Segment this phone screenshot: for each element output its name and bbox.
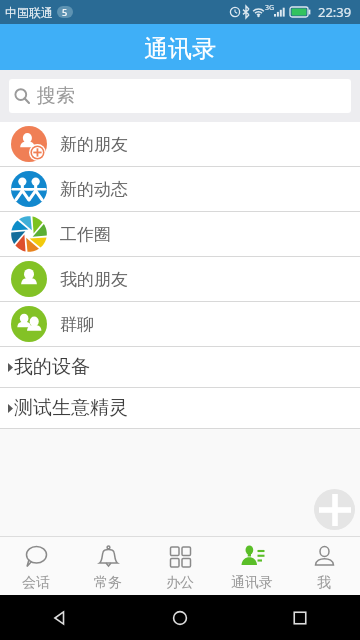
staticText: 测试生意精灵: [14, 396, 128, 420]
staticText: 通讯录: [231, 574, 273, 592]
button[interactable]: 新的动态: [0, 167, 360, 212]
button[interactable]: 工作圈: [0, 212, 360, 257]
button[interactable]: 我的设备: [0, 347, 360, 388]
button[interactable]: 新的朋友: [0, 122, 360, 167]
button[interactable]: 我的朋友: [0, 257, 360, 302]
staticText: 常务: [94, 574, 122, 592]
staticText: 5: [62, 6, 68, 18]
button[interactable]: Add: [314, 489, 355, 530]
button[interactable]: 群聊: [0, 302, 360, 347]
staticText: 通讯录: [144, 34, 216, 64]
button[interactable]: 我: [288, 537, 360, 595]
button[interactable]: Back: [0, 595, 120, 640]
staticText: 我的设备: [14, 355, 90, 379]
staticText: 3G: [265, 3, 275, 13]
button[interactable]: 常务: [72, 537, 144, 595]
staticText: 中国联通: [5, 5, 53, 20]
button[interactable]: Recents: [240, 595, 360, 640]
button[interactable]: Home: [120, 595, 240, 640]
staticText: 22:39: [318, 3, 352, 21]
staticText: 群聊: [60, 314, 94, 335]
button[interactable]: 办公: [144, 537, 216, 595]
button[interactable]: 搜索: [9, 79, 351, 113]
staticText: 新的朋友: [60, 134, 128, 155]
button[interactable]: 会话: [0, 537, 72, 595]
staticText: 会话: [22, 574, 50, 592]
staticText: 工作圈: [60, 224, 111, 245]
staticText: 新的动态: [60, 179, 128, 200]
staticText: 我: [317, 574, 331, 592]
staticText: 办公: [166, 574, 194, 592]
button[interactable]: 通讯录: [216, 537, 288, 595]
staticText: 搜索: [37, 84, 75, 108]
button[interactable]: 测试生意精灵: [0, 388, 360, 429]
staticText: 我的朋友: [60, 269, 128, 290]
